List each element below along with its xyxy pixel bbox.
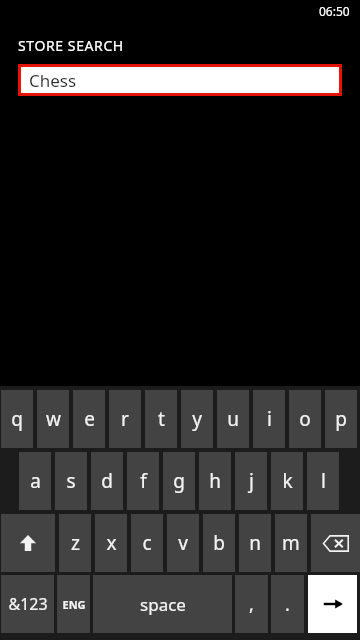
staticText: f xyxy=(140,468,147,494)
button[interactable]: g xyxy=(163,452,195,510)
button[interactable]: &123 xyxy=(1,575,54,633)
staticText: m xyxy=(282,530,300,556)
button[interactable]: l xyxy=(307,452,339,510)
staticText: t xyxy=(158,406,165,432)
button[interactable]: c xyxy=(131,514,163,572)
button[interactable]: a xyxy=(19,452,51,510)
staticText: v xyxy=(178,530,188,556)
staticText: z xyxy=(71,530,80,556)
button[interactable]: h xyxy=(199,452,231,510)
staticText: x xyxy=(106,530,117,556)
staticText: c xyxy=(142,530,152,556)
button[interactable]: , xyxy=(235,575,268,633)
button[interactable]: b xyxy=(203,514,235,572)
staticText: j xyxy=(249,468,254,494)
staticText: Chess xyxy=(29,69,77,92)
button[interactable]: x xyxy=(95,514,127,572)
button[interactable]: s xyxy=(55,452,87,510)
button[interactable]: Enter xyxy=(308,575,357,633)
button[interactable]: f xyxy=(127,452,159,510)
button[interactable]: j xyxy=(235,452,267,510)
staticText: g xyxy=(173,468,185,494)
staticText: q xyxy=(11,406,23,432)
button[interactable]: o xyxy=(289,390,321,448)
button[interactable]: v xyxy=(167,514,199,572)
button[interactable]: e xyxy=(73,390,105,448)
button[interactable]: w xyxy=(37,390,69,448)
button[interactable]: d xyxy=(91,452,123,510)
staticText: u xyxy=(227,406,239,432)
staticText: . xyxy=(285,592,290,617)
staticText: STORE SEARCH xyxy=(18,36,124,55)
button[interactable]: ENG xyxy=(57,575,90,633)
button[interactable]: u xyxy=(217,390,249,448)
button[interactable]: z xyxy=(59,514,91,572)
button[interactable]: space xyxy=(93,575,232,633)
button[interactable]: k xyxy=(271,452,303,510)
button[interactable]: . xyxy=(271,575,304,633)
staticText: i xyxy=(267,406,272,432)
staticText: 06:50 xyxy=(319,3,350,19)
staticText: p xyxy=(335,406,347,432)
staticText: &123 xyxy=(8,593,48,615)
button[interactable]: t xyxy=(145,390,177,448)
staticText: space xyxy=(140,593,186,616)
staticText: w xyxy=(46,406,61,432)
staticText: a xyxy=(30,468,41,494)
staticText: b xyxy=(213,530,225,556)
staticText: e xyxy=(84,406,95,432)
staticText: s xyxy=(66,468,76,494)
button[interactable]: Chess xyxy=(18,64,342,96)
staticText: o xyxy=(299,406,311,432)
staticText: d xyxy=(101,468,113,494)
button[interactable]: r xyxy=(109,390,141,448)
button[interactable]: y xyxy=(181,390,213,448)
button[interactable]: n xyxy=(239,514,271,572)
staticText: ENG xyxy=(62,597,86,612)
staticText: n xyxy=(249,530,261,556)
staticText: y xyxy=(192,406,202,432)
button[interactable]: p xyxy=(325,390,357,448)
staticText: , xyxy=(249,592,254,617)
button[interactable]: q xyxy=(1,390,33,448)
button[interactable]: Shift xyxy=(1,514,55,572)
button[interactable]: i xyxy=(253,390,285,448)
staticText: h xyxy=(209,468,221,494)
staticText: r xyxy=(121,406,129,432)
staticText: l xyxy=(321,468,326,494)
staticText: k xyxy=(282,468,293,494)
button[interactable]: Backspace xyxy=(311,514,360,572)
button[interactable]: m xyxy=(275,514,307,572)
